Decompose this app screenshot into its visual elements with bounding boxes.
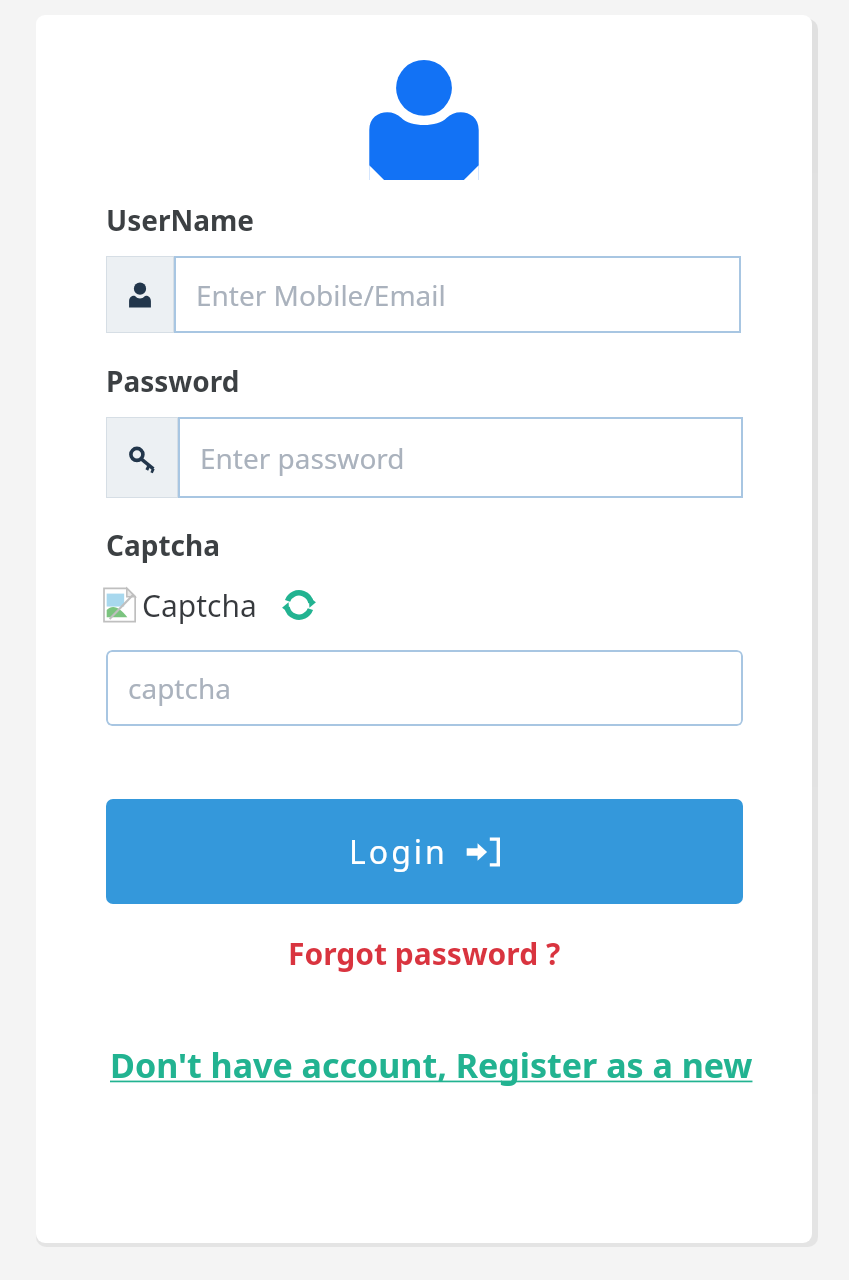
staticText: Enter password [200, 439, 405, 477]
button[interactable]: Forgot password ? [288, 933, 561, 974]
staticText: Forgot password ? [288, 933, 561, 974]
button[interactable]: captcha [106, 650, 743, 726]
button[interactable]: Enter Mobile/Email [106, 256, 741, 333]
staticText: Password [106, 362, 240, 400]
staticText: UserName [106, 201, 255, 239]
button[interactable]: Enter password [106, 417, 743, 498]
button[interactable]: Login [106, 799, 743, 904]
staticText: Captcha [106, 526, 221, 564]
staticText: Don't have account, Register as a new us… [110, 1042, 812, 1088]
staticText: Login [349, 830, 448, 874]
button[interactable]: Refresh captcha [277, 583, 321, 627]
staticText: captcha [128, 669, 231, 707]
staticText: Enter Mobile/Email [196, 276, 446, 314]
button[interactable]: Don't have account, Register as a new us… [110, 1042, 812, 1088]
staticText: Captcha [142, 585, 257, 626]
